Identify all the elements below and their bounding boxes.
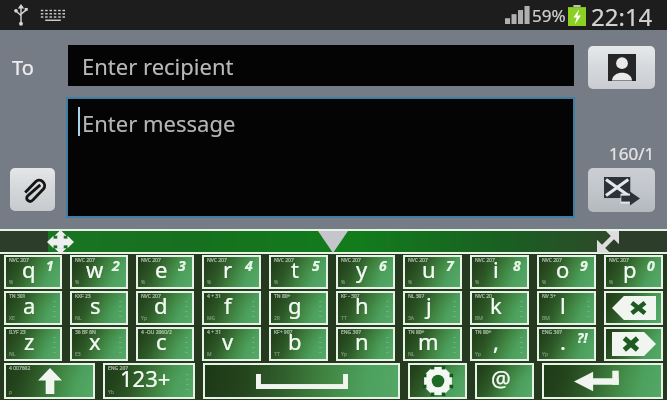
staticText: 59% [532,4,566,27]
staticText: NL [9,351,16,358]
staticText: Yp [542,351,548,358]
other: Delete [612,332,656,356]
staticText: -- -- -- -- [119,334,122,354]
button[interactable]: Enter [544,365,661,397]
staticText: ?! [577,328,588,347]
staticText: c [156,330,167,355]
button[interactable]: NVC 207 [539,257,594,287]
button[interactable]: TN 80+ [271,293,326,323]
button[interactable]: KXF 23 [72,293,126,323]
button[interactable]: Send message [588,168,655,212]
button[interactable]: NVC 207 [204,257,259,287]
button[interactable]: TN 80+ [405,329,460,359]
button[interactable]: NVC 207 [6,257,60,287]
staticText: -- -- -- -- [185,298,188,318]
staticText: 9 [580,256,588,275]
button[interactable]: NVC 207 [138,257,192,287]
staticText: NVC 20 [475,293,492,300]
staticText: BM [475,315,483,322]
staticText: x [89,330,101,355]
staticText: % [274,279,279,286]
button[interactable]: Resize keyboard [597,231,619,253]
staticText: NVC 207 [141,257,161,264]
staticText: 4 + 31 [207,329,222,336]
staticText: TN 80+ [475,329,492,336]
button[interactable]: Settings [410,365,465,397]
staticText: Yp [475,351,481,358]
button[interactable]: KF+ 907 [271,329,326,359]
button[interactable]: ENG 307 [338,329,393,359]
button[interactable]: NVC 207 [606,257,661,287]
button[interactable]: NVC 207 [138,293,192,323]
staticText: ILYF 23 [9,329,26,336]
staticText: TT [274,351,280,358]
staticText: -- -- -- -- [520,334,523,354]
staticText: NVC 207 [9,257,29,264]
staticText: v [222,330,234,355]
button[interactable]: TN 80+ [472,329,527,359]
staticText: % [9,279,14,286]
staticText: 4 -OU 2060/2 [141,329,172,336]
button[interactable] [48,231,610,252]
button[interactable]: 4 + 31 [204,293,259,323]
staticText: KXF 23 [75,293,91,300]
button[interactable]: Space [205,365,398,397]
staticText: p [623,258,637,283]
button[interactable] [0,231,48,252]
staticText: Yp [341,351,347,358]
button[interactable]: NVC 207 [472,257,527,287]
button[interactable]: @ [477,365,532,397]
staticText: NVC 207 [408,257,428,264]
staticText: 160/1 [609,142,655,165]
button[interactable]: 4 -OU 2060/2 [138,329,192,359]
button[interactable]: Choose contact [588,46,655,89]
button[interactable]: NVC 207 [405,257,460,287]
staticText: -- -- -- -- [53,334,56,354]
staticText: % [609,279,614,286]
staticText: Yp [141,315,147,322]
staticText: o [556,258,570,283]
button[interactable]: 4 + 31 [204,329,259,359]
staticText: BM [542,315,550,322]
staticText: ENG 307 [542,329,563,336]
button[interactable]: 36 BF 6N [72,329,126,359]
button[interactable]: Move keyboard [47,230,74,254]
button[interactable]: TN 301 [6,293,60,323]
staticText: y [356,258,368,283]
staticText: NVC 207 [341,257,361,264]
button[interactable]: NL 307 [405,293,460,323]
button[interactable]: ENG 207 [105,365,193,397]
staticText: NVC 207 [207,257,227,264]
button[interactable]: Enter message [68,99,573,216]
staticText: -- -- -- -- [186,371,189,391]
staticText: ENG 307 [341,329,362,336]
button[interactable]: Delete [606,329,661,359]
button[interactable]: Backspace [606,293,661,323]
staticText: t [291,258,299,283]
button[interactable]: Attach [10,168,55,211]
button[interactable]: ILYF 23 [6,329,60,359]
staticText: r [223,258,233,283]
button[interactable]: Enter recipient [68,45,574,86]
staticText: -- -- -- -- [319,334,322,354]
staticText: Enter recipient [82,51,234,81]
staticText: -- -- -- -- [520,298,523,318]
button[interactable] [610,231,667,252]
staticText: 4 007602 [9,365,31,372]
staticText: E3 [75,351,81,358]
staticText: ENG 207 [108,365,129,372]
staticText: % [207,279,212,286]
staticText: u [422,258,436,283]
button[interactable]: NVC 207 [338,257,393,287]
button[interactable]: NVC 207 [72,257,126,287]
staticText: e [155,258,168,283]
button[interactable]: 4 007602 [6,365,93,397]
staticText: TN 80+ [274,293,291,300]
button[interactable]: NVC 20 [472,293,527,323]
staticText: -- -- -- -- [252,298,255,318]
button[interactable]: NV 3+ [539,293,594,323]
button[interactable]: ENG 307 [539,329,594,359]
button[interactable]: NVC 207 [271,257,326,287]
staticText: 2R [274,315,280,322]
button[interactable]: KF - 307 [338,293,393,323]
